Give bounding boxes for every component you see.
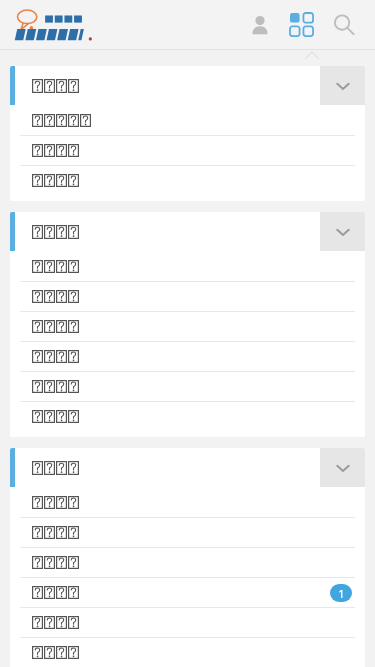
button[interactable] (10, 548, 365, 577)
button[interactable] (10, 608, 365, 637)
button[interactable] (10, 448, 365, 487)
button[interactable] (10, 66, 365, 105)
button[interactable] (10, 312, 365, 341)
button[interactable] (10, 105, 365, 135)
button[interactable]: 1 (10, 578, 365, 607)
button[interactable] (10, 136, 365, 165)
button[interactable]: Discuz home (12, 8, 104, 42)
button[interactable] (10, 212, 365, 251)
button[interactable] (10, 402, 365, 431)
button[interactable]: Account (243, 8, 277, 42)
button[interactable] (10, 282, 365, 311)
button[interactable] (10, 518, 365, 547)
button[interactable] (10, 342, 365, 371)
button[interactable] (10, 166, 365, 195)
button[interactable]: Sections (285, 8, 319, 42)
button[interactable] (10, 638, 365, 667)
button[interactable] (10, 251, 365, 281)
button[interactable] (10, 487, 365, 517)
staticText: 1 (338, 586, 345, 601)
button[interactable]: Search (327, 8, 361, 42)
button[interactable] (10, 372, 365, 401)
